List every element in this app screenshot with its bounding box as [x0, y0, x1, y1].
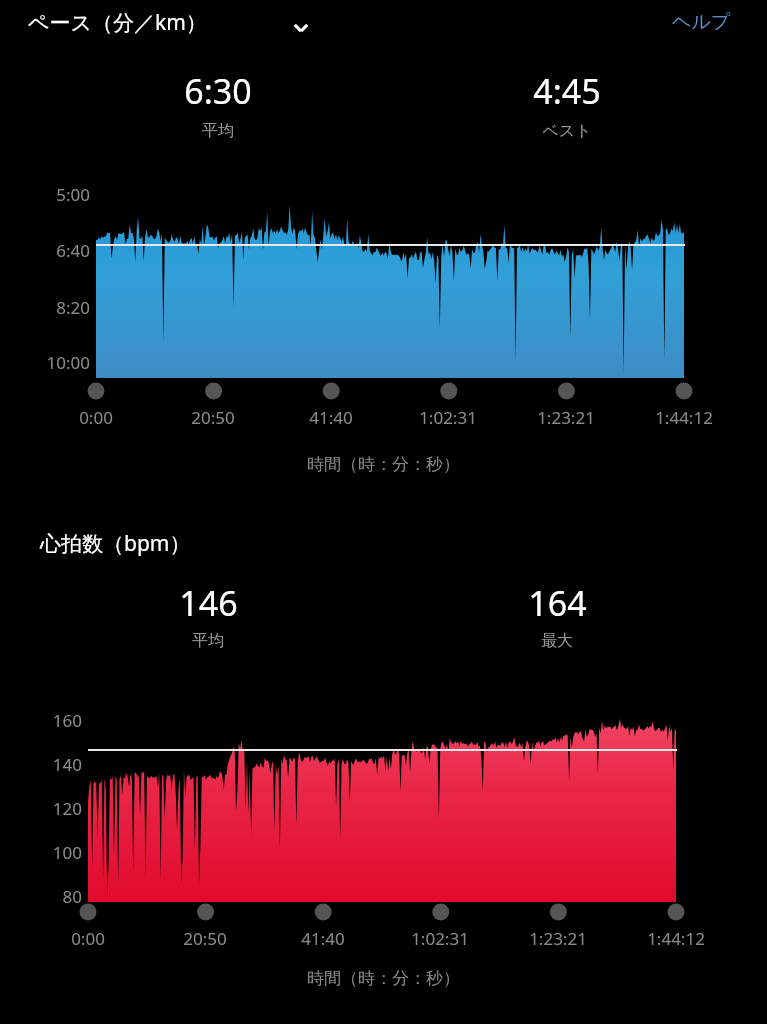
staticText: ペース（分／km） — [28, 8, 207, 37]
staticText: 140 — [52, 753, 82, 776]
staticText: 1:23:21 — [537, 406, 595, 429]
staticText: 0:00 — [71, 927, 105, 950]
staticText: 0:00 — [79, 406, 113, 429]
staticText: 1:02:31 — [411, 927, 469, 950]
staticText: 41:40 — [301, 927, 345, 950]
staticText: 146 — [179, 580, 238, 626]
staticText: 最大 — [541, 631, 573, 651]
button[interactable]: 心拍数（bpm） — [40, 529, 191, 558]
staticText: 41:40 — [309, 406, 353, 429]
staticText: 1:44:12 — [647, 927, 705, 950]
staticText: 時間（時：分：秒） — [307, 968, 460, 989]
staticText: 100 — [52, 841, 82, 864]
staticText: ベスト — [542, 121, 592, 141]
staticText: 1:02:31 — [419, 406, 477, 429]
staticText: 6:30 — [184, 68, 252, 114]
staticText: 平均 — [202, 121, 234, 141]
staticText: 5:00 — [56, 183, 90, 206]
staticText: 1:44:12 — [655, 406, 713, 429]
staticText: 4:45 — [533, 68, 601, 114]
staticText: 平均 — [192, 631, 224, 651]
staticText: 時間（時：分：秒） — [307, 454, 460, 475]
button[interactable]: Change metric — [283, 10, 319, 46]
staticText: 20:50 — [183, 927, 227, 950]
staticText: 80 — [62, 885, 82, 908]
staticText: 164 — [528, 580, 587, 626]
staticText: 10:00 — [46, 351, 90, 374]
staticText: ヘルプ — [672, 10, 731, 34]
button[interactable]: ペース（分／km） — [28, 8, 207, 37]
staticText: 1:23:21 — [529, 927, 587, 950]
staticText: 20:50 — [191, 406, 235, 429]
button[interactable]: ヘルプ — [672, 10, 731, 34]
staticText: 6:40 — [56, 239, 90, 262]
staticText: 心拍数（bpm） — [40, 529, 191, 558]
staticText: 120 — [52, 797, 82, 820]
staticText: 160 — [52, 709, 82, 732]
staticText: 8:20 — [56, 296, 90, 319]
